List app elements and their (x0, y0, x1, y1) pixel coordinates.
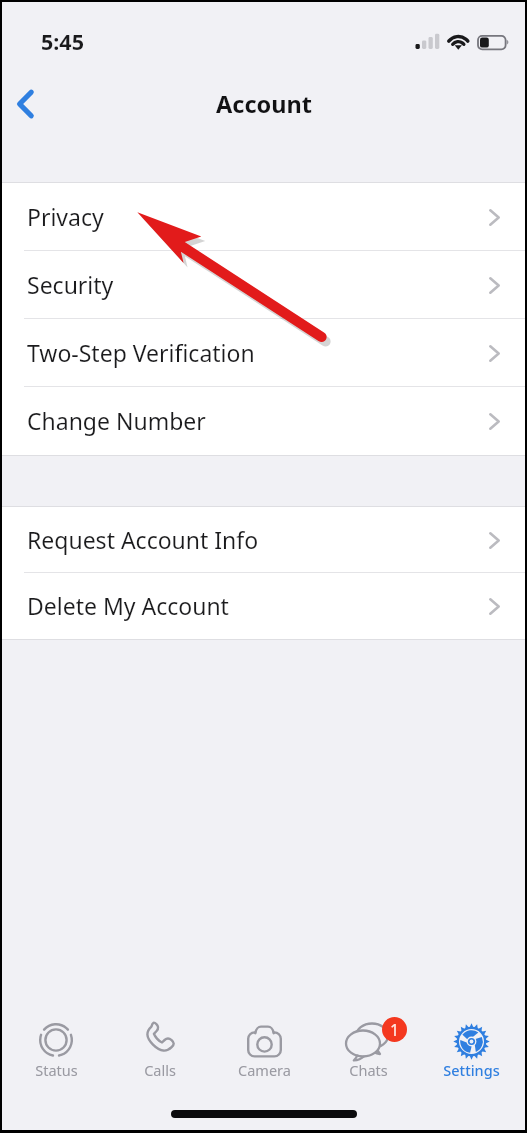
staticText: Status (35, 1060, 78, 1080)
button[interactable]: Settings (420, 1012, 522, 1094)
staticText: Two-Step Verification (27, 337, 255, 368)
staticText: Camera (238, 1060, 291, 1080)
staticText: Calls (144, 1060, 176, 1080)
staticText: Security (27, 269, 114, 300)
button[interactable]: Delete My Account (2, 573, 525, 639)
button[interactable]: Back (5, 82, 49, 126)
button[interactable]: Security (2, 251, 525, 319)
button[interactable]: Change Number (2, 387, 525, 455)
staticText: 1 (390, 1019, 400, 1041)
staticText: Delete My Account (27, 590, 229, 621)
staticText: Request Account Info (27, 524, 259, 555)
button[interactable]: 1 (317, 1012, 419, 1094)
staticText: Privacy (27, 201, 104, 232)
button[interactable]: Request Account Info (2, 507, 525, 573)
button[interactable]: Calls (109, 1012, 211, 1094)
staticText: Settings (443, 1060, 500, 1080)
staticText: Account (216, 88, 312, 120)
button[interactable]: Two-Step Verification (2, 319, 525, 387)
staticText: Change Number (27, 405, 206, 436)
staticText: 5:45 (41, 27, 84, 56)
button[interactable]: Camera (213, 1012, 315, 1094)
button[interactable]: Privacy (2, 183, 525, 251)
button[interactable]: Status (5, 1012, 107, 1094)
staticText: Chats (349, 1060, 388, 1080)
